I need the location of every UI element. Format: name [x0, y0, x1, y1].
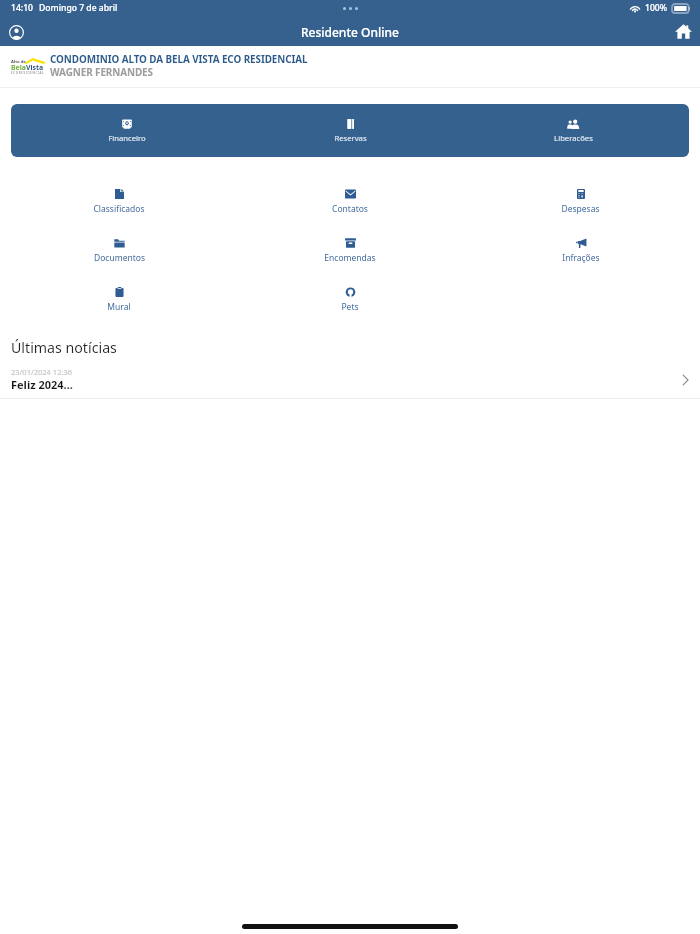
button[interactable]: Documentos [86, 235, 153, 267]
button[interactable]: Encomendas [316, 235, 384, 267]
button[interactable]: Início [671, 20, 695, 43]
button[interactable]: Reservas [239, 104, 462, 157]
staticText: 23/01/2024 12:36 [11, 367, 73, 377]
button[interactable]: Financeiro [15, 104, 239, 157]
staticText: 100% [645, 2, 668, 14]
staticText: Infrações [562, 252, 600, 264]
staticText: Reservas [334, 133, 367, 141]
staticText: Residente Online [301, 24, 399, 40]
staticText: Alto de [11, 59, 26, 65]
staticText: WAGNER FERNANDES [50, 65, 153, 78]
staticText: 14:10 [11, 2, 34, 14]
staticText: Vista [26, 63, 44, 72]
staticText: Classificados [93, 203, 145, 215]
staticText: Domingo 7 de abril [39, 2, 118, 14]
staticText: Documentos [94, 252, 145, 264]
button[interactable]: Pets [333, 284, 367, 316]
staticText: Despesas [561, 203, 600, 215]
button[interactable]: Mural [99, 284, 139, 316]
staticText: Financeiro [108, 133, 146, 141]
button[interactable]: Despesas [553, 186, 608, 218]
staticText: Liberações [554, 133, 593, 141]
button[interactable]: Perfil [5, 21, 27, 43]
staticText: Encomendas [324, 252, 376, 264]
staticText: Feliz 2024... [11, 377, 73, 392]
button[interactable]: Liberações [462, 104, 685, 157]
staticText: CONDOMINIO ALTO DA BELA VISTA ECO RESIDE… [50, 52, 308, 65]
staticText: Pets [341, 301, 359, 313]
staticText: ECORESIDENCIAL [11, 71, 45, 75]
staticText: Bela [11, 63, 26, 72]
button[interactable]: Classificados [85, 186, 153, 218]
button[interactable]: 23/01/2024 12:36 [0, 367, 700, 392]
staticText: Últimas notícias [11, 338, 117, 357]
staticText: Mural [107, 301, 131, 313]
button[interactable]: Contatos [324, 186, 376, 218]
staticText: Contatos [332, 203, 368, 215]
button[interactable]: Infrações [554, 235, 608, 267]
